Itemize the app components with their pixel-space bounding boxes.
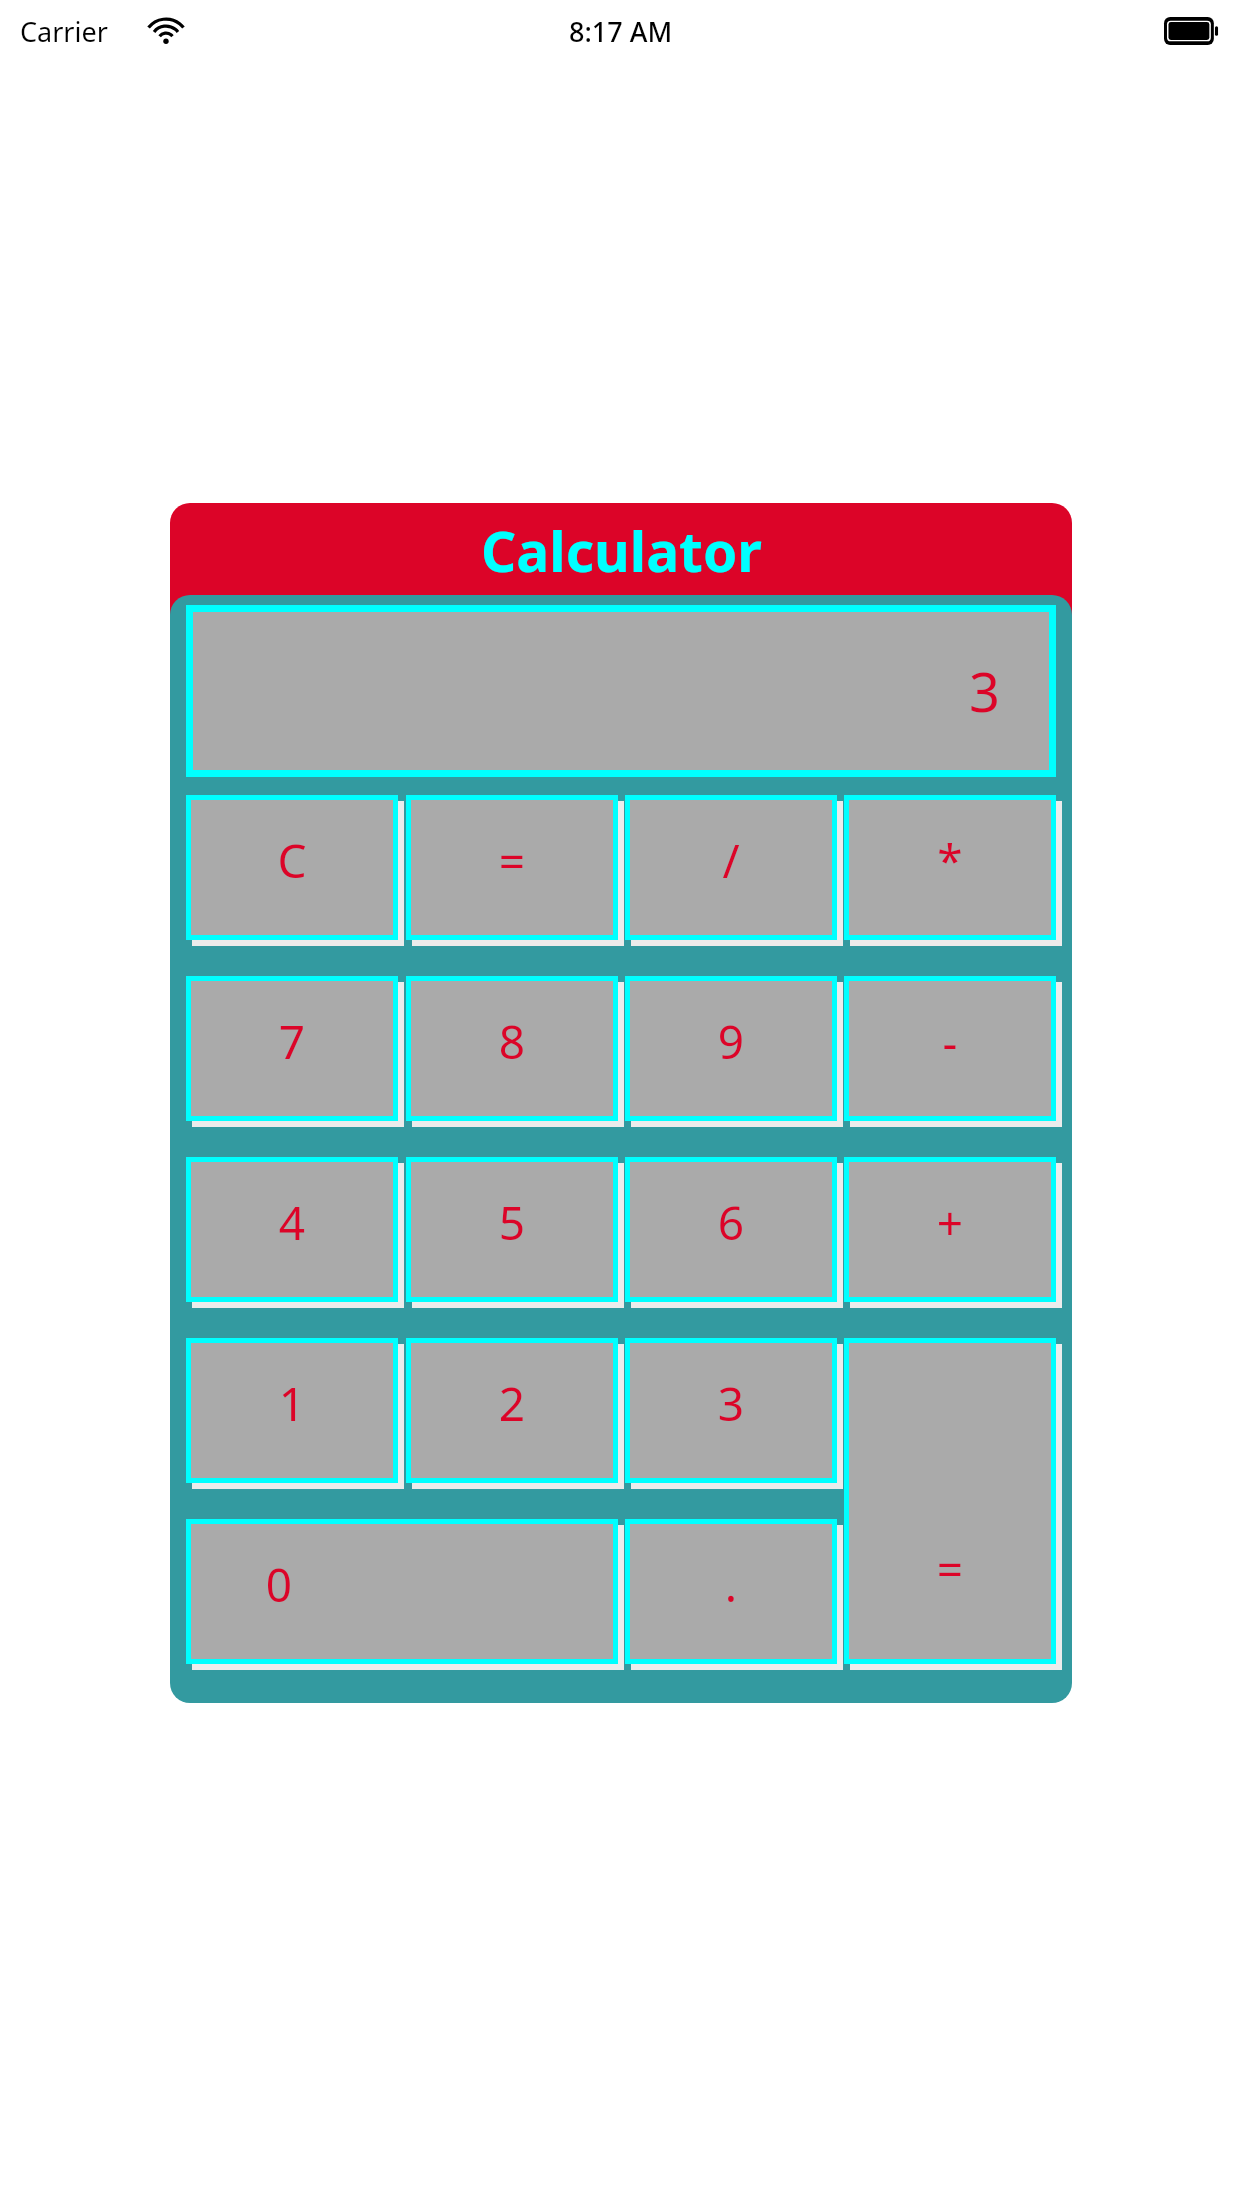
staticText: 9 [661, 1010, 801, 1073]
button[interactable]: + [844, 1157, 1056, 1302]
button[interactable]: 3 [625, 1338, 837, 1483]
staticText: 4 [222, 1191, 362, 1254]
staticText: Calculator [481, 513, 762, 588]
button[interactable]: C [186, 795, 398, 940]
staticText: 7 [222, 1010, 362, 1073]
button[interactable]: 9 [625, 976, 837, 1121]
button[interactable]: - [844, 976, 1056, 1121]
other: Battery full [1164, 17, 1220, 45]
button[interactable]: 3 [186, 605, 1056, 777]
staticText: / [661, 829, 801, 892]
staticText: + [880, 1191, 1020, 1254]
button[interactable]: * [844, 795, 1056, 940]
button[interactable]: 7 [186, 976, 398, 1121]
staticText: * [880, 829, 1020, 892]
staticText: C [222, 829, 362, 892]
button[interactable]: 1 [186, 1338, 398, 1483]
button[interactable]: 2 [406, 1338, 618, 1483]
button[interactable]: = [406, 795, 618, 940]
staticText: = [442, 829, 582, 892]
button[interactable]: 6 [625, 1157, 837, 1302]
staticText: 5 [442, 1191, 582, 1254]
button[interactable]: 0 [186, 1519, 618, 1664]
staticText: 2 [442, 1372, 582, 1435]
button[interactable]: 5 [406, 1157, 618, 1302]
staticText: 0 [209, 1553, 349, 1616]
staticText: . [661, 1553, 801, 1616]
staticText: 3 [661, 1372, 801, 1435]
staticText: 6 [661, 1191, 801, 1254]
staticText: - [880, 1010, 1020, 1073]
button[interactable]: / [625, 795, 837, 940]
button[interactable]: 8 [406, 976, 618, 1121]
staticText: = [880, 1537, 1020, 1600]
staticText: 8:17 AM [569, 13, 673, 50]
button[interactable]: = [844, 1338, 1056, 1664]
staticText: 8 [442, 1010, 582, 1073]
other: Wi-Fi signal [150, 18, 182, 45]
button[interactable]: 4 [186, 1157, 398, 1302]
button[interactable]: . [625, 1519, 837, 1664]
staticText: Carrier [20, 13, 108, 50]
staticText: 1 [222, 1372, 362, 1435]
staticText: 3 [969, 654, 1000, 728]
